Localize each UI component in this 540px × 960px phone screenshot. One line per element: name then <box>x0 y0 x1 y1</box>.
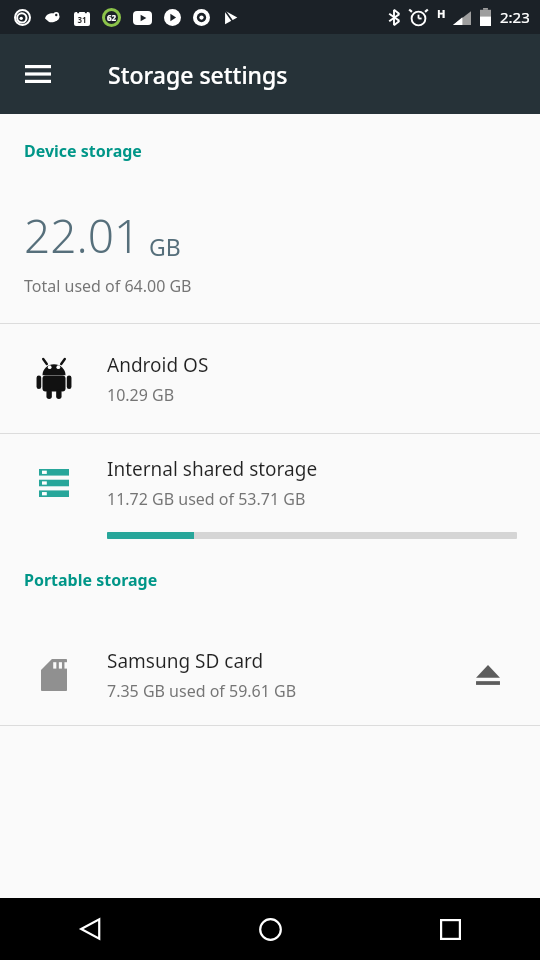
button[interactable]: Internal shared storage <box>0 434 540 569</box>
staticText: H <box>437 6 446 21</box>
staticText: Samsung SD card <box>107 648 264 674</box>
button[interactable]: Eject SD card <box>464 651 512 699</box>
staticText: 2:23 <box>500 7 530 27</box>
staticText: 62 <box>107 12 117 23</box>
staticText: 31 <box>77 14 87 25</box>
staticText: 10.29 GB <box>107 384 175 406</box>
staticText: Total used of 64.00 GB <box>24 275 192 297</box>
button[interactable]: Home <box>180 898 360 960</box>
button[interactable]: Android OS <box>0 324 540 433</box>
staticText: 7.35 GB used of 59.61 GB <box>107 680 297 702</box>
staticText: 22.01 <box>24 204 141 267</box>
staticText: Portable storage <box>24 569 158 591</box>
staticText: Storage settings <box>108 59 288 90</box>
button[interactable]: Samsung SD card <box>0 625 540 725</box>
button[interactable]: Back <box>0 898 180 960</box>
staticText: Device storage <box>24 140 142 162</box>
staticText: 11.72 GB used of 53.71 GB <box>107 488 306 510</box>
button[interactable]: Recent apps <box>360 898 540 960</box>
staticText: Internal shared storage <box>107 456 318 482</box>
staticText: Android OS <box>107 352 209 378</box>
button[interactable]: Open navigation drawer <box>10 46 66 102</box>
staticText: GB <box>149 231 181 262</box>
